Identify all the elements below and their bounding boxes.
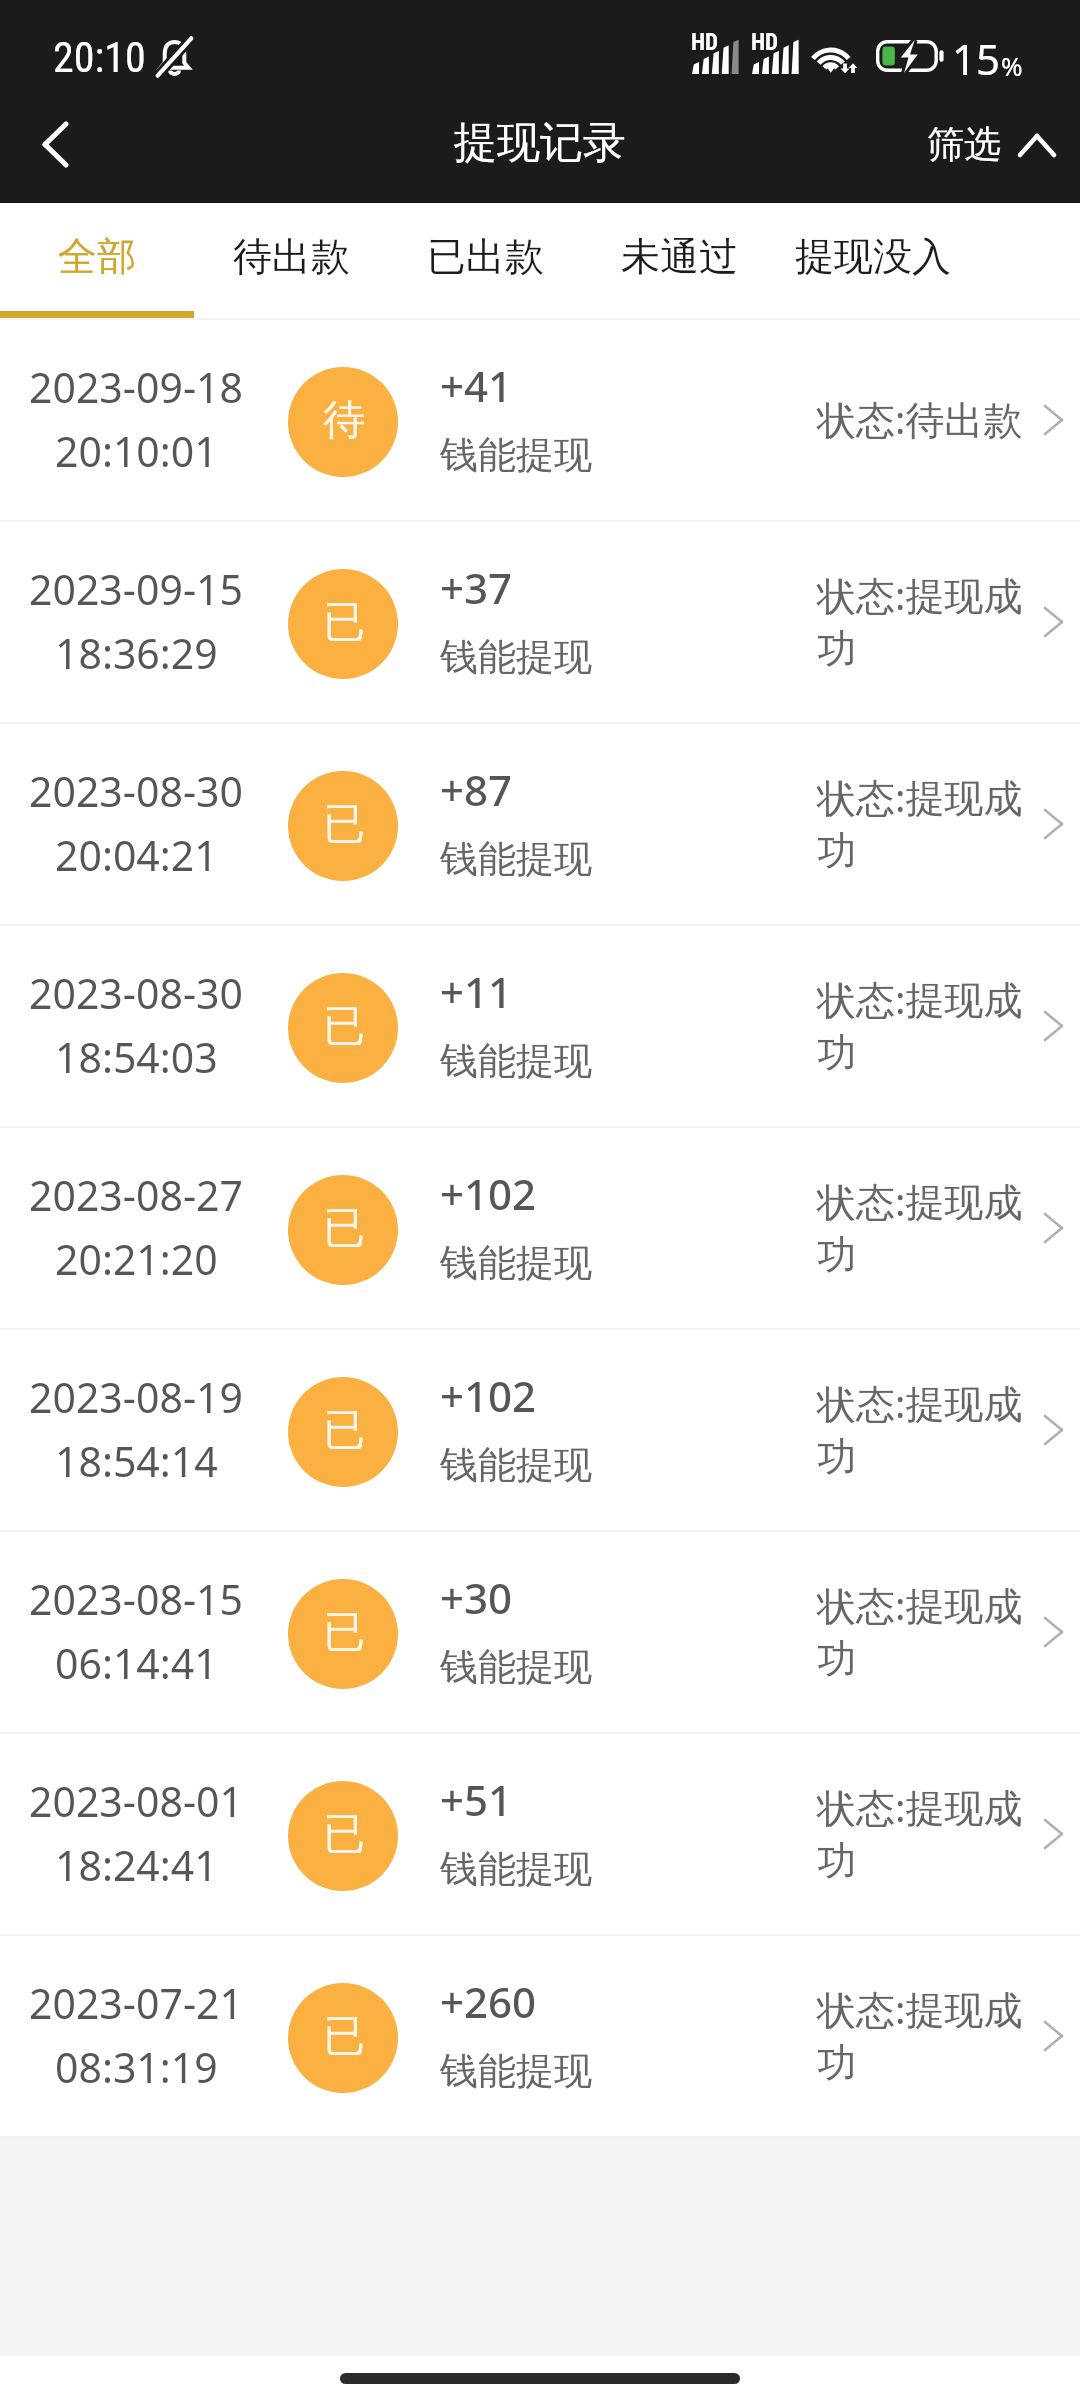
staticText: 提现记录 [454, 116, 626, 170]
staticText: 钱能提现 [440, 431, 592, 479]
staticText: 已出款 [427, 232, 544, 281]
staticText: 钱能提现 [440, 835, 592, 883]
staticText: 状态:提现成功 [817, 1376, 1033, 1481]
staticText: 08:31:19 [55, 2039, 218, 2095]
button[interactable]: 2023-09-18 [0, 320, 1080, 520]
staticText: +41 [440, 357, 513, 414]
button[interactable]: 已出款 [388, 203, 582, 320]
staticText: 2023-08-01 [29, 1773, 244, 1829]
staticText: 已 [323, 798, 365, 851]
staticText: 2023-09-18 [29, 359, 244, 415]
button[interactable]: 筛选 [927, 103, 1054, 203]
button[interactable]: Back [0, 103, 108, 203]
staticText: 20:10:01 [55, 423, 218, 479]
staticText: 提现没入 [795, 232, 951, 281]
staticText: 状态:提现成功 [817, 568, 1033, 673]
button[interactable]: 2023-07-21 [0, 1936, 1080, 2136]
staticText: 待出款 [233, 232, 350, 281]
button[interactable]: 提现没入 [776, 203, 970, 320]
staticText: 2023-08-19 [29, 1369, 244, 1425]
staticText: 18:24:41 [55, 1837, 218, 1893]
staticText: 全部 [58, 232, 136, 281]
staticText: 18:54:14 [55, 1433, 218, 1489]
button[interactable]: 2023-08-30 [0, 926, 1080, 1126]
staticText: +30 [440, 1569, 513, 1626]
button[interactable]: 待出款 [194, 203, 388, 320]
staticText: +102 [440, 1367, 537, 1424]
staticText: 未通过 [621, 232, 738, 281]
staticText: 已 [323, 1202, 365, 1255]
staticText: 已 [323, 1606, 365, 1659]
button[interactable]: 2023-08-19 [0, 1330, 1080, 1530]
staticText: 筛选 [927, 121, 1001, 168]
staticText: +102 [440, 1165, 537, 1222]
staticText: 已 [323, 596, 365, 649]
staticText: HD [691, 29, 719, 56]
staticText: HD [751, 29, 779, 56]
staticText: 状态:提现成功 [817, 770, 1033, 875]
staticText: 2023-08-30 [29, 763, 244, 819]
staticText: 20:10 [53, 33, 146, 82]
staticText: 状态:提现成功 [817, 1174, 1033, 1279]
staticText: 钱能提现 [440, 1643, 592, 1691]
button[interactable]: 2023-08-15 [0, 1532, 1080, 1732]
staticText: 已 [323, 1404, 365, 1457]
staticText: +260 [440, 1973, 537, 2030]
staticText: 2023-08-30 [29, 965, 244, 1021]
staticText: 待 [323, 394, 365, 447]
button[interactable]: 未通过 [582, 203, 776, 320]
staticText: 状态:提现成功 [817, 972, 1033, 1077]
staticText: +51 [440, 1771, 513, 1828]
staticText: 15 [952, 30, 1001, 87]
staticText: 2023-08-15 [29, 1571, 244, 1627]
staticText: 已 [323, 2010, 365, 2063]
button[interactable]: 2023-09-15 [0, 522, 1080, 722]
button[interactable]: 全部 [0, 203, 194, 320]
staticText: % [1001, 48, 1023, 83]
staticText: +87 [440, 761, 513, 818]
staticText: +11 [440, 963, 513, 1020]
staticText: 钱能提现 [440, 2047, 592, 2095]
button[interactable]: 2023-08-30 [0, 724, 1080, 924]
staticText: 2023-07-21 [29, 1975, 244, 2031]
staticText: 状态:提现成功 [817, 1982, 1033, 2087]
staticText: 钱能提现 [440, 633, 592, 681]
button[interactable]: 2023-08-01 [0, 1734, 1080, 1934]
staticText: 2023-09-15 [29, 561, 244, 617]
staticText: 06:14:41 [55, 1635, 218, 1691]
staticText: 钱能提现 [440, 1441, 592, 1489]
staticText: 钱能提现 [440, 1239, 592, 1287]
staticText: 状态:待出款 [817, 392, 1023, 445]
staticText: 钱能提现 [440, 1037, 592, 1085]
staticText: 18:36:29 [55, 625, 218, 681]
staticText: 20:21:20 [55, 1231, 218, 1287]
staticText: 钱能提现 [440, 1845, 592, 1893]
staticText: +37 [440, 559, 513, 616]
staticText: 20:04:21 [55, 827, 218, 883]
staticText: 18:54:03 [55, 1029, 218, 1085]
button[interactable]: 2023-08-27 [0, 1128, 1080, 1328]
staticText: 已 [323, 1000, 365, 1053]
staticText: 2023-08-27 [29, 1167, 244, 1223]
staticText: 状态:提现成功 [817, 1780, 1033, 1885]
staticText: 已 [323, 1808, 365, 1861]
staticText: 状态:提现成功 [817, 1578, 1033, 1683]
